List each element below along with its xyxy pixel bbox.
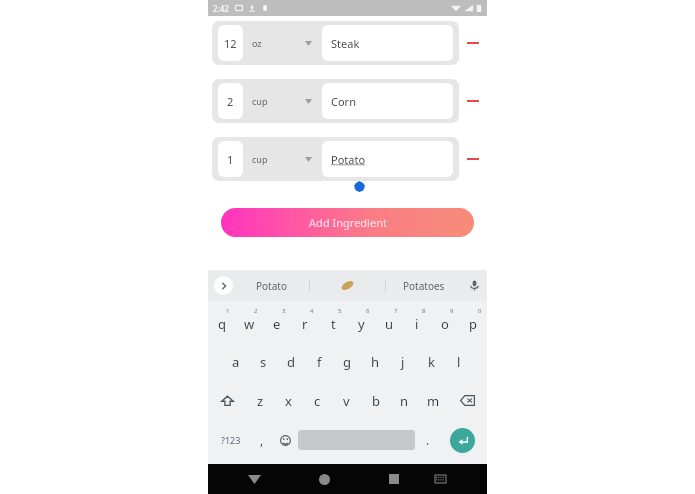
staticText: t [331, 315, 336, 333]
staticText: 0 [478, 307, 482, 315]
staticText: 5 [338, 307, 342, 315]
button[interactable]: k [417, 342, 445, 381]
staticText: ?123 [221, 434, 241, 446]
button[interactable]: g [333, 342, 361, 381]
button[interactable]: Potatoes [397, 274, 451, 298]
staticText: , [260, 432, 264, 448]
button[interactable]: v [332, 381, 361, 420]
button[interactable]: Switch keyboard [425, 464, 455, 494]
button[interactable]: Emoji [273, 420, 298, 460]
staticText: n [400, 392, 409, 410]
staticText: 6 [366, 307, 370, 315]
button[interactable]: Voice input [461, 270, 487, 301]
staticText: cup [252, 95, 268, 107]
button[interactable]: 1 [212, 137, 459, 181]
button[interactable]: 1 [218, 141, 243, 177]
button[interactable]: z [246, 381, 274, 420]
staticText: k [428, 353, 435, 371]
staticText: 1 [227, 152, 234, 167]
staticText: 2 [227, 94, 234, 109]
button[interactable]: 12 [212, 21, 459, 65]
staticText: v [343, 392, 350, 410]
button[interactable]: Home [309, 464, 339, 494]
staticText: 3 [282, 307, 286, 315]
button[interactable]: Remove ingredient [459, 137, 487, 181]
button[interactable]: n [390, 381, 419, 420]
button[interactable]: b [361, 381, 390, 420]
button[interactable]: d [277, 342, 305, 381]
staticText: r [302, 315, 308, 333]
button[interactable]: , [251, 420, 273, 460]
button[interactable]: 4 [291, 303, 319, 342]
button[interactable]: Select unit [301, 94, 315, 108]
staticText: b [372, 392, 380, 410]
button[interactable]: j [389, 342, 417, 381]
button[interactable]: Remove ingredient [459, 21, 487, 65]
staticText: l [457, 353, 461, 371]
button[interactable]: s [249, 342, 277, 381]
staticText: z [257, 392, 264, 410]
button[interactable]: Select unit [301, 152, 315, 166]
staticText: m [427, 392, 440, 410]
button[interactable]: Recent apps [379, 464, 409, 494]
staticText: e [273, 315, 281, 333]
button[interactable]: 7 [375, 303, 403, 342]
staticText: j [401, 353, 405, 371]
button[interactable]: 12 [218, 25, 243, 61]
button[interactable]: 1 [208, 303, 235, 342]
button[interactable]: ?123 [211, 420, 251, 460]
button[interactable]: x [274, 381, 303, 420]
button[interactable]: 9 [431, 303, 459, 342]
staticText: Steak [331, 36, 360, 51]
button[interactable]: c [303, 381, 332, 420]
button[interactable]: Add Ingredient [221, 208, 474, 237]
staticText: d [287, 353, 295, 371]
button[interactable]: 8 [403, 303, 431, 342]
button[interactable]: Potato [248, 274, 295, 298]
staticText: cup [252, 153, 268, 165]
staticText: 4 [310, 307, 314, 315]
staticText: p [469, 315, 477, 333]
button[interactable]: 2 [218, 83, 243, 119]
staticText: x [285, 392, 292, 410]
staticText: a [232, 353, 240, 371]
button[interactable]: l [445, 342, 473, 381]
button[interactable]: 3 [263, 303, 291, 342]
staticText: u [385, 315, 394, 333]
button[interactable]: Remove ingredient [459, 79, 487, 123]
button[interactable]: Backspace [448, 381, 487, 420]
button[interactable]: Select unit [301, 36, 315, 50]
button[interactable]: h [361, 342, 389, 381]
staticText: Potatoes [403, 279, 445, 293]
button[interactable]: 5 [319, 303, 347, 342]
button[interactable]: Potato [322, 141, 453, 177]
staticText: y [358, 315, 365, 333]
button[interactable]: Back [239, 464, 269, 494]
button[interactable]: f [305, 342, 333, 381]
button[interactable]: a [222, 342, 249, 381]
button[interactable]: Steak [322, 25, 453, 61]
staticText: w [244, 315, 255, 333]
button[interactable]: More suggestions [214, 276, 233, 295]
staticText: 7 [394, 307, 398, 315]
button[interactable]: Corn [322, 83, 453, 119]
staticText: 2 [254, 307, 258, 315]
staticText: i [415, 315, 419, 333]
button[interactable]: . [415, 420, 440, 460]
button[interactable]: Potato emoji [335, 274, 360, 297]
button[interactable]: m [419, 381, 448, 420]
button[interactable]: 2 [212, 79, 459, 123]
staticText: f [317, 353, 322, 371]
staticText: Potato [331, 152, 366, 167]
staticText: 9 [450, 307, 454, 315]
button[interactable]: Enter [450, 428, 475, 453]
staticText: s [260, 353, 267, 371]
staticText: c [314, 392, 321, 410]
staticText: . [426, 432, 430, 448]
staticText: g [343, 353, 351, 371]
button[interactable]: 2 [235, 303, 263, 342]
button[interactable]: Shift [208, 381, 246, 420]
button[interactable]: 6 [347, 303, 375, 342]
button[interactable]: 0 [459, 303, 487, 342]
